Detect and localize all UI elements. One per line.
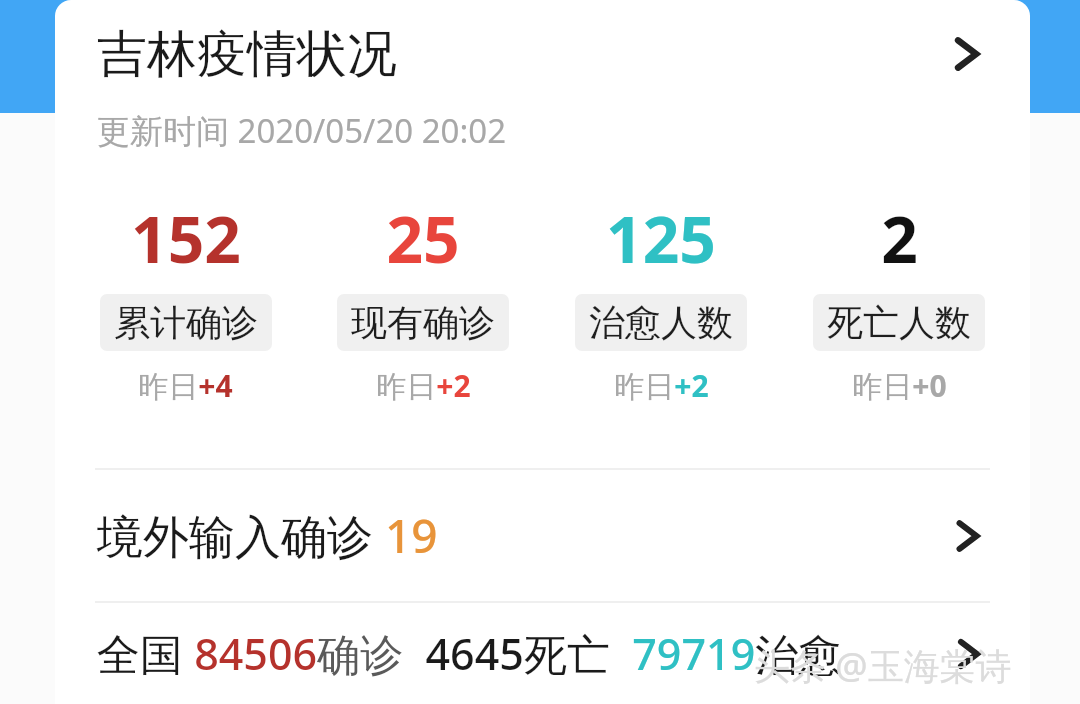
staticText: 125 [606, 195, 716, 282]
button[interactable]: 125 [542, 195, 780, 406]
staticText: 25 [386, 195, 460, 282]
other: Open overseas imported cases [950, 519, 984, 553]
button[interactable]: 152 [67, 195, 304, 406]
other: Open Jilin epidemic details [948, 36, 984, 72]
button[interactable]: 吉林疫情状况 [55, 0, 1030, 108]
button[interactable]: 全国 84506确诊 4645死亡 79719治愈 [55, 603, 1030, 704]
staticText: 昨日+2 [376, 365, 471, 406]
staticText: 现有确诊 [351, 300, 495, 345]
staticText: 昨日+0 [852, 365, 947, 406]
staticText: 头条 @玉海棠诗 [754, 641, 1012, 690]
staticText: 全国 84506确诊 4645死亡 79719治愈 [97, 624, 842, 683]
staticText: 境外输入确诊 19 [97, 504, 438, 567]
button[interactable]: 25 [304, 195, 542, 406]
button[interactable]: 2 [780, 195, 1018, 406]
staticText: 治愈人数 [589, 300, 733, 345]
staticText: 2 [881, 195, 918, 282]
staticText: 累计确诊 [114, 300, 258, 345]
staticText: 152 [131, 195, 241, 282]
staticText: 吉林疫情状况 [97, 23, 397, 86]
staticText: 昨日+2 [614, 365, 709, 406]
button[interactable]: 境外输入确诊 19 [55, 470, 1030, 601]
staticText: 死亡人数 [827, 300, 971, 345]
staticText: 更新时间 2020/05/20 20:02 [97, 108, 507, 153]
other: Open national statistics [952, 638, 984, 670]
staticText: 昨日+4 [138, 365, 233, 406]
